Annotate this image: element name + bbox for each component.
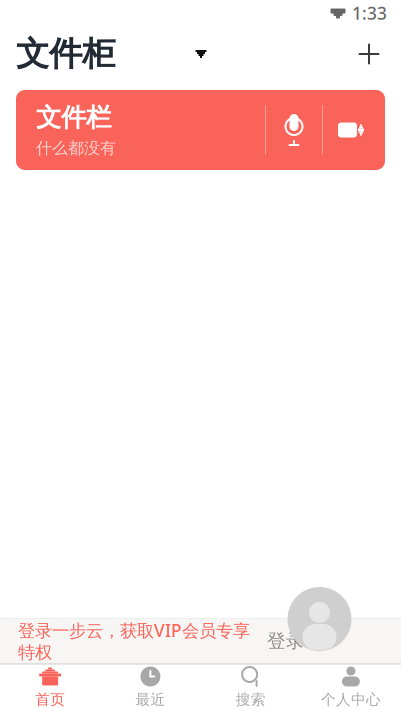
button[interactable]: 首页 bbox=[0, 664, 100, 710]
staticText: 最近 bbox=[135, 690, 165, 708]
button[interactable]: 录像 bbox=[323, 102, 379, 158]
staticText: 首页 bbox=[35, 690, 65, 708]
button[interactable]: 个人中心 bbox=[301, 664, 401, 710]
staticText: 1:33 bbox=[352, 1, 387, 24]
button[interactable]: 登录一步云，获取VIP会员专享特权 bbox=[0, 618, 401, 664]
staticText: 什么都没有 bbox=[36, 138, 116, 158]
button[interactable]: 文件栏 bbox=[16, 90, 385, 170]
staticText: 个人中心 bbox=[321, 690, 381, 708]
staticText: 搜索 bbox=[236, 690, 266, 708]
button[interactable]: 新建 bbox=[343, 32, 395, 76]
staticText: 文件柜 bbox=[16, 33, 115, 74]
button[interactable]: 搜索 bbox=[200, 664, 301, 710]
staticText: 登录一步云，获取VIP会员专享特权 bbox=[18, 619, 250, 663]
button[interactable]: 最近 bbox=[100, 664, 200, 710]
staticText: 文件栏 bbox=[36, 102, 111, 133]
button[interactable]: 切换文件柜 bbox=[179, 32, 223, 76]
button[interactable]: 录音 bbox=[266, 102, 322, 158]
staticText: 登录 bbox=[267, 629, 305, 652]
